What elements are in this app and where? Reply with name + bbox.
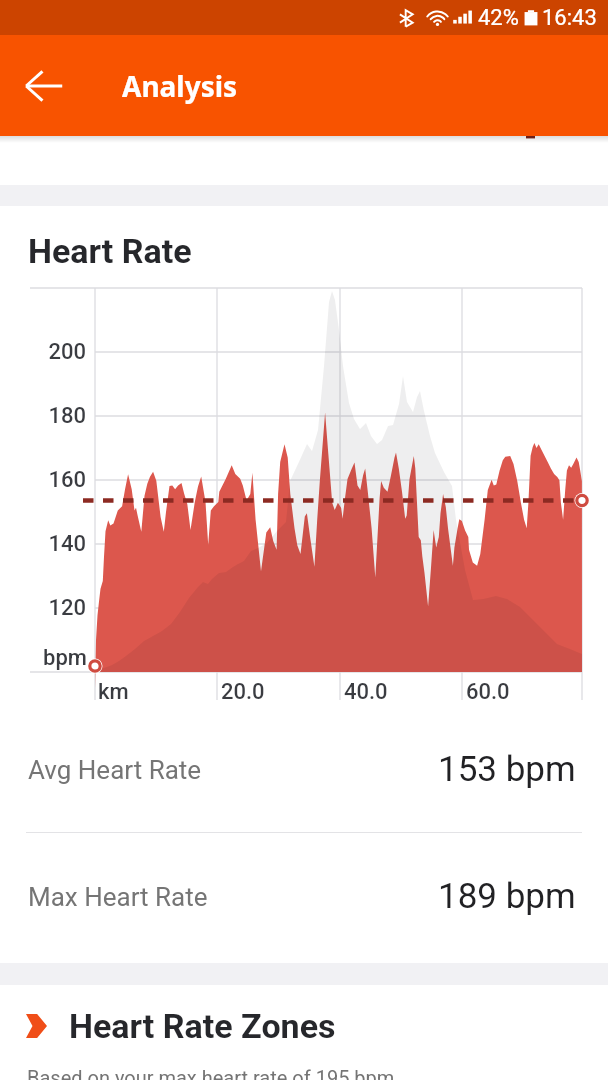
staticText: 60.0 — [466, 679, 510, 705]
staticText: 140 — [0, 531, 86, 557]
staticText: Analysis — [122, 67, 238, 105]
staticText: Max Heart Rate — [28, 882, 208, 912]
staticText: 180 — [0, 403, 86, 429]
staticText: bpm — [0, 645, 87, 671]
button[interactable]: Max Heart Rate — [0, 833, 608, 960]
staticText: 20.0 — [221, 679, 265, 705]
staticText: Heart Rate — [28, 231, 192, 271]
staticText: Heart Rate Zones — [69, 1006, 336, 1046]
staticText: Based on your max heart rate of 195 bpm — [27, 1066, 395, 1080]
staticText: 40.0 — [344, 679, 388, 705]
staticText: 200 — [0, 339, 86, 365]
button[interactable]: Back — [16, 58, 72, 114]
staticText: 16:43 — [542, 5, 597, 31]
staticText: km — [98, 679, 129, 705]
staticText: 120 — [0, 595, 86, 621]
staticText: Avg Heart Rate — [28, 755, 202, 785]
staticText: 189 bpm — [438, 876, 576, 917]
staticText: 153 bpm — [438, 749, 576, 790]
staticText: 160 — [0, 467, 86, 493]
staticText: 42% — [478, 5, 519, 31]
button[interactable]: Avg Heart Rate — [0, 706, 608, 833]
